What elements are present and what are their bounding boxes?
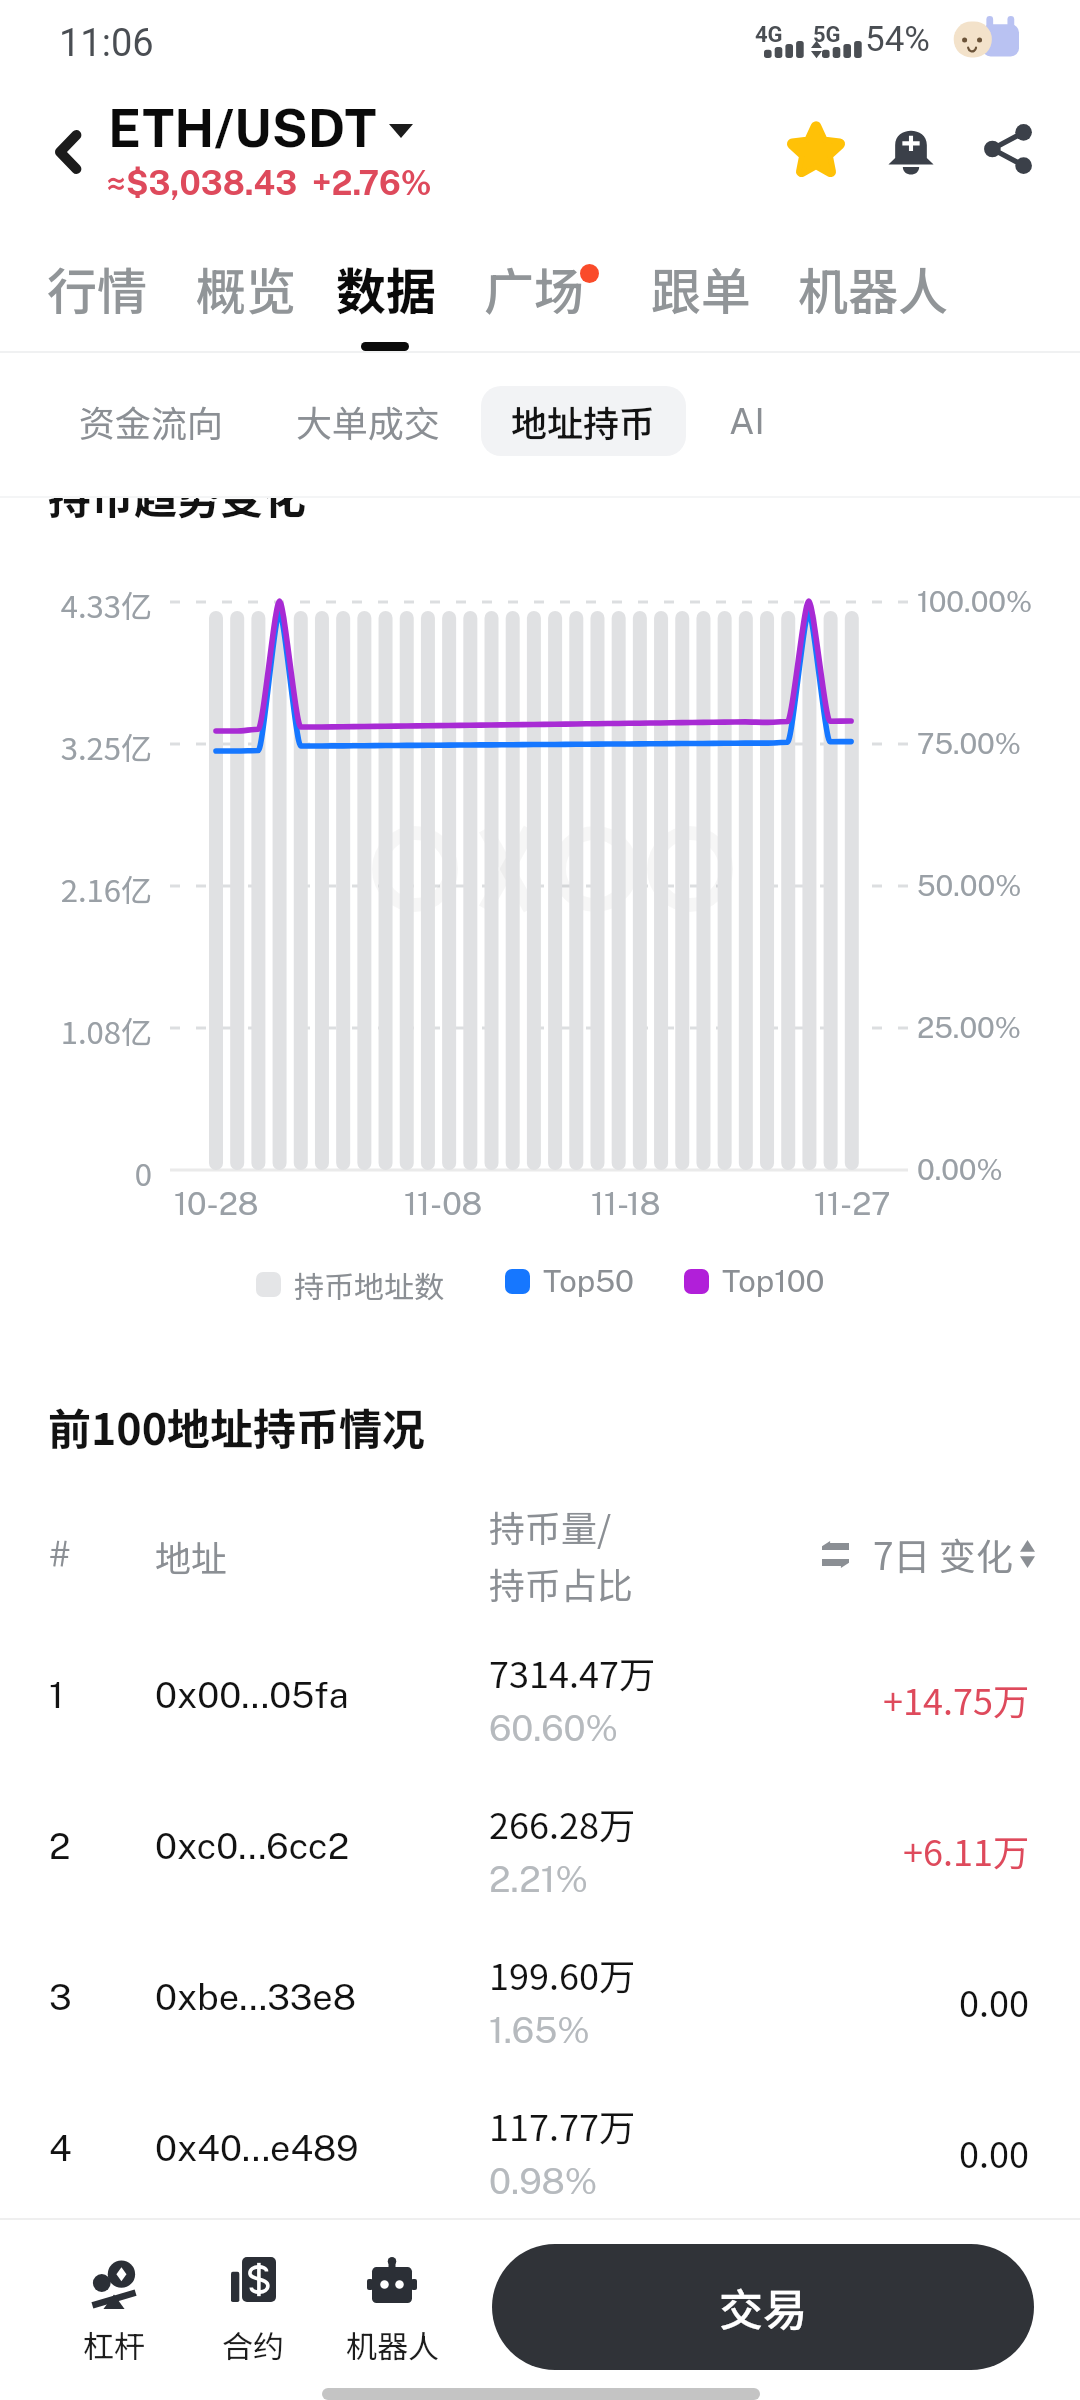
staticText: 地址 [155, 1530, 228, 1582]
staticText: 54% [865, 19, 930, 60]
button[interactable]: Top50 [505, 1263, 635, 1299]
staticText: 机器人 [798, 252, 948, 324]
staticText: 4.33亿 [0, 582, 152, 627]
button[interactable]: 数据 [336, 252, 436, 324]
staticText: 11-27 [814, 1185, 891, 1223]
staticText: 3.25亿 [0, 724, 152, 769]
staticText: +14.75万 [0, 1673, 1029, 1725]
staticText: 地址持币 [511, 395, 656, 447]
staticText: 4 [49, 2127, 72, 2169]
button[interactable]: 地址持币 [481, 386, 686, 456]
staticText: 资金流向 [79, 395, 224, 447]
staticText: 11-08 [404, 1185, 483, 1223]
staticText: 概览 [196, 252, 296, 324]
button[interactable]: AI [699, 386, 795, 456]
staticText: 50.00% [917, 868, 1022, 902]
button[interactable]: 2 [0, 1749, 1080, 1900]
button[interactable]: 大单成交 [266, 386, 471, 456]
button[interactable]: 机器人 [324, 2238, 460, 2362]
button[interactable]: 交易 [492, 2244, 1034, 2370]
staticText: 交易 [719, 2275, 807, 2339]
staticText: 0xc0...6cc2 [155, 1825, 350, 1867]
staticText: 117.77万 [489, 2099, 635, 2151]
button[interactable]: 持币地址数 [256, 1263, 444, 1306]
button[interactable]: ETH/USDT [108, 98, 434, 198]
staticText: 广场 [484, 252, 584, 324]
staticText: 0x40...e489 [155, 2127, 359, 2169]
staticText: 266.28万 [489, 1797, 635, 1849]
staticText: 持币趋势变化 [48, 497, 306, 526]
staticText: 持币量/ [489, 1500, 612, 1552]
staticText: 11-18 [591, 1185, 661, 1223]
staticText: 合约 [222, 2322, 284, 2367]
staticText: 75.00% [917, 726, 1022, 760]
staticText: 0x00...05fa [155, 1674, 349, 1716]
staticText: 机器人 [346, 2322, 439, 2367]
staticText: 1.65% [489, 2009, 590, 2051]
staticText: 前100地址持币情况 [48, 1395, 426, 1457]
staticText: 1.08亿 [0, 1008, 152, 1053]
staticText: 11:06 [59, 21, 154, 66]
button[interactable]: 概览 [196, 252, 296, 324]
button[interactable]: Favorite [768, 101, 864, 197]
button[interactable]: 杠杆 [46, 2238, 182, 2362]
staticText: 2.21% [489, 1858, 588, 1900]
button[interactable]: 机器人 [798, 252, 948, 324]
button[interactable]: Price alert [863, 101, 959, 197]
button[interactable]: 资金流向 [49, 386, 254, 456]
staticText: Top100 [722, 1263, 825, 1299]
staticText: ETH/USDT [108, 98, 377, 159]
staticText: 持币占比 [489, 1557, 634, 1609]
button[interactable]: 跟单 [651, 252, 751, 324]
staticText: 7314.47万 [489, 1646, 655, 1698]
staticText: 7日 变化 [873, 1527, 1013, 1581]
staticText: 0.00 [0, 2126, 1029, 2178]
button[interactable]: 行情 [47, 252, 147, 324]
staticText: 5G [813, 22, 841, 48]
staticText: 60.60% [489, 1707, 619, 1749]
staticText: 25.00% [917, 1010, 1021, 1044]
staticText: Top50 [543, 1263, 635, 1299]
button[interactable]: 1 [0, 1598, 1080, 1749]
staticText: 2.16亿 [0, 866, 152, 911]
staticText: ≈$3,038.43 +2.76% [106, 164, 432, 203]
button[interactable]: Back [20, 104, 116, 200]
button[interactable]: Sort by 7 day change [822, 1527, 1035, 1581]
staticText: 跟单 [651, 252, 751, 324]
staticText: 大单成交 [296, 395, 441, 447]
staticText: # [49, 1532, 71, 1574]
button[interactable]: 广场 [484, 252, 584, 324]
staticText: 行情 [47, 252, 147, 324]
staticText: 199.60万 [489, 1948, 635, 2000]
staticText: 数据 [336, 252, 436, 324]
button[interactable]: 合约 [185, 2238, 321, 2362]
staticText: 4G [755, 22, 783, 48]
staticText: 0 [0, 1150, 152, 1195]
staticText: AI [729, 400, 765, 442]
staticText: 100.00% [917, 584, 1033, 618]
button[interactable]: Top100 [684, 1263, 825, 1299]
button[interactable]: 4 [0, 2051, 1080, 2202]
staticText: 3 [49, 1976, 72, 2018]
staticText: 持币地址数 [294, 1263, 444, 1306]
staticText: 杠杆 [83, 2322, 145, 2367]
button[interactable]: Share [960, 101, 1056, 197]
staticText: 0.00 [0, 1975, 1029, 2027]
staticText: 0.98% [489, 2160, 598, 2202]
staticText: 0.00% [917, 1152, 1003, 1186]
staticText: +6.11万 [0, 1824, 1029, 1876]
staticText: 10-28 [174, 1185, 259, 1223]
staticText: 2 [49, 1825, 71, 1867]
staticText: 0xbe...33e8 [155, 1976, 357, 2018]
staticText: 1 [49, 1674, 64, 1716]
button[interactable]: 3 [0, 1900, 1080, 2051]
